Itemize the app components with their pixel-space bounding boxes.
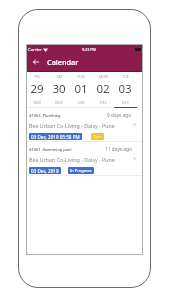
staticText: Carrier	[28, 47, 42, 53]
staticText: #1063 -Plumbing	[29, 113, 61, 118]
staticText: DEC	[78, 100, 85, 105]
staticText: #1061 -Swimming pool	[29, 147, 72, 152]
button[interactable]: TUE	[114, 72, 136, 108]
staticText: DEC	[100, 100, 107, 105]
button[interactable]: Back	[29, 55, 42, 68]
button[interactable]: SUN	[70, 72, 92, 108]
button[interactable]: #1061 -Swimming pool	[26, 142, 143, 175]
button[interactable]: #1063 -Plumbing	[26, 108, 143, 141]
staticText: DEC	[122, 100, 129, 105]
staticText: 11 days ago	[105, 146, 132, 153]
staticText: 03	[118, 81, 132, 97]
staticText: Calendar	[47, 57, 79, 67]
staticText: 30	[52, 81, 66, 97]
button[interactable]: FRI	[26, 72, 48, 108]
staticText: 29	[30, 81, 44, 97]
staticText: SAT	[56, 74, 63, 79]
staticText: 9:23 PM	[82, 47, 96, 52]
staticText: Bee Urban Co-Living - Daisy - Pune	[29, 122, 115, 129]
staticText: Open	[93, 134, 102, 139]
staticText: 02	[96, 81, 110, 97]
staticText: 9 days ago	[107, 112, 132, 119]
staticText: 01	[74, 81, 88, 97]
staticText: MON	[99, 74, 108, 79]
staticText: FRI	[34, 74, 40, 79]
staticText: NOV	[33, 100, 41, 105]
staticText: SUN	[77, 74, 85, 79]
button[interactable]: MON	[92, 72, 114, 108]
staticText: NOV	[55, 100, 63, 105]
staticText: Bee Urban Co-Living - Daisy - Pune	[29, 156, 115, 163]
staticText: 03 Dec, 2019	[31, 168, 59, 174]
button[interactable]: SAT	[48, 72, 70, 108]
staticText: 03 Dec, 2019 05:58 PM	[31, 134, 80, 140]
staticText: In Progress	[70, 168, 92, 173]
staticText: TUE	[122, 74, 129, 79]
